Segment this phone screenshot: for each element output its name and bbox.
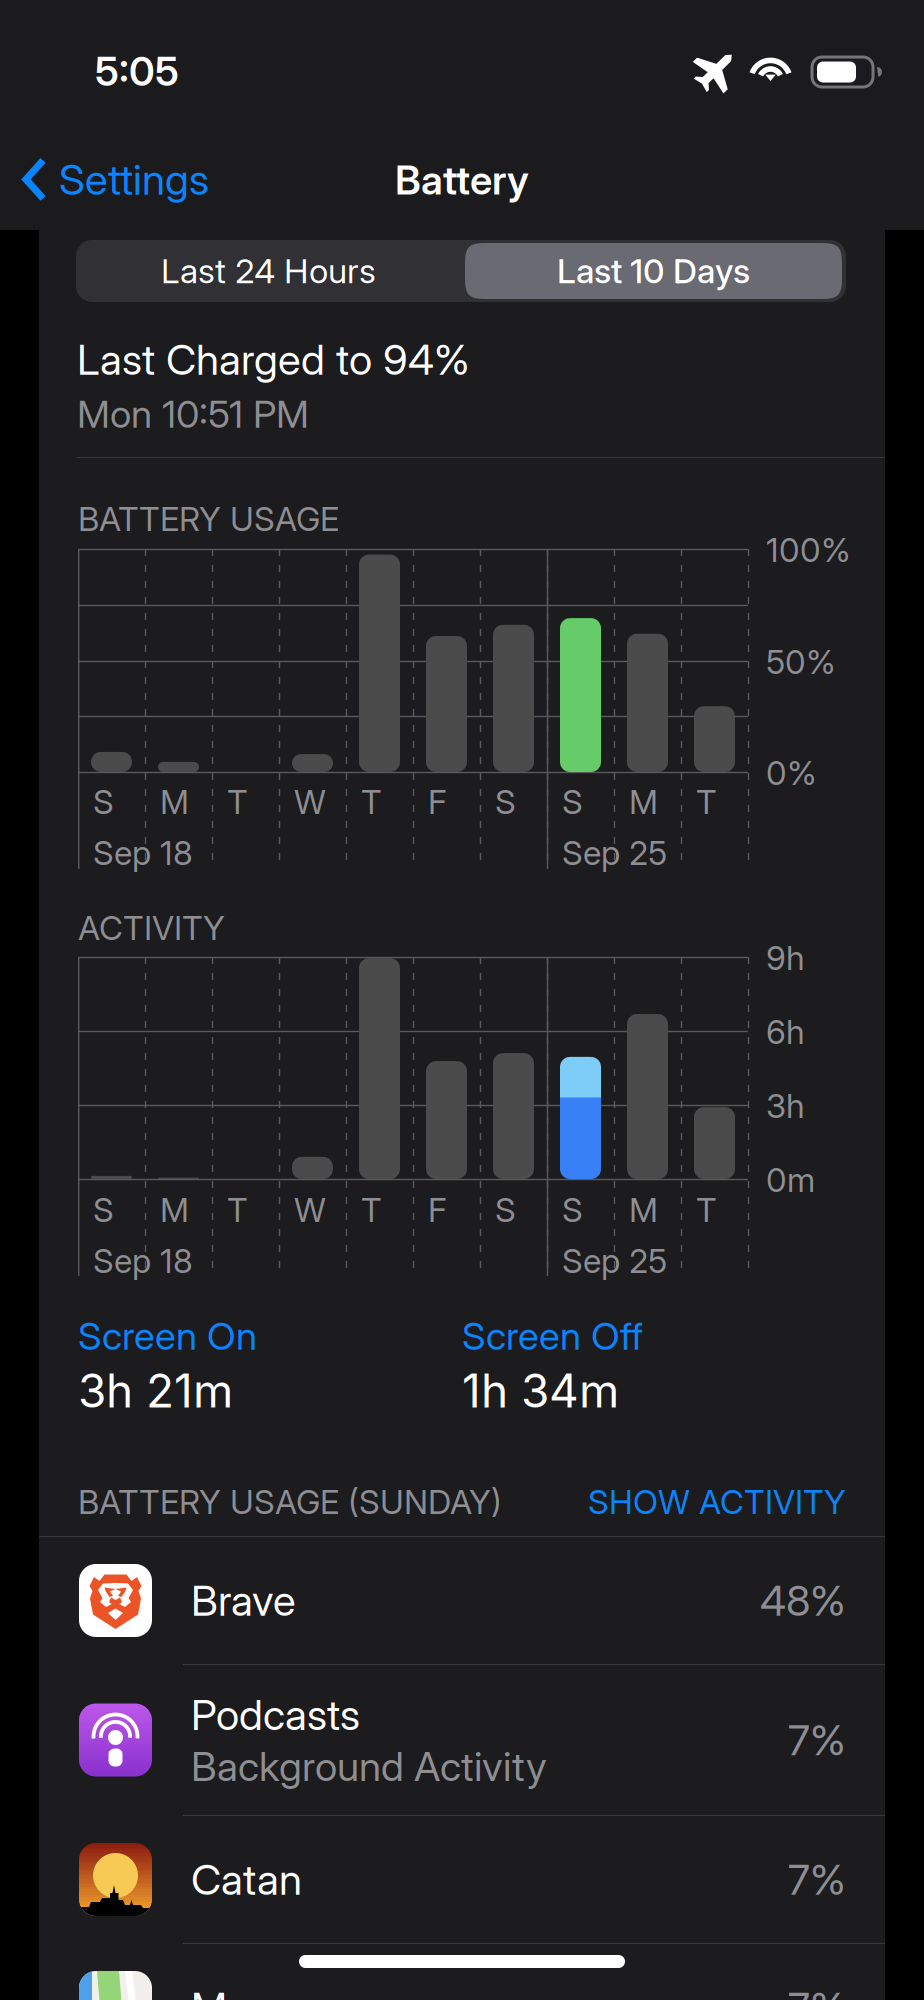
staticText: S xyxy=(562,782,583,822)
staticText: T xyxy=(361,782,382,822)
staticText: 7% xyxy=(788,1854,846,1905)
staticText: BATTERY USAGE xyxy=(78,499,339,539)
staticText: Background Activity xyxy=(191,1742,547,1791)
staticText: T xyxy=(227,1190,248,1230)
staticText: S xyxy=(93,782,114,822)
staticText: Battery xyxy=(395,156,529,204)
staticText: Brave xyxy=(191,1575,296,1626)
staticText: SHOW ACTIVITY xyxy=(588,1482,846,1522)
staticText: Maps xyxy=(191,1982,293,2000)
staticText: 100% xyxy=(766,530,851,570)
staticText: 6h xyxy=(766,1012,805,1052)
staticText: 50% xyxy=(766,642,836,682)
staticText: Mon 10:51 PM xyxy=(77,391,309,437)
staticText: Sep 25 xyxy=(562,1241,667,1281)
staticText: T xyxy=(227,782,248,822)
button[interactable]: Last 24 Hours xyxy=(76,240,461,302)
staticText: W xyxy=(294,782,326,822)
staticText: ACTIVITY xyxy=(78,908,225,948)
staticText: T xyxy=(696,782,717,822)
button[interactable]: Podcasts xyxy=(39,1665,885,1815)
staticText: T xyxy=(361,1190,382,1230)
staticText: 1h 34m xyxy=(462,1363,619,1419)
staticText: S xyxy=(495,1190,516,1230)
staticText: 9h xyxy=(766,938,805,978)
staticText: Settings xyxy=(59,154,209,205)
staticText: W xyxy=(294,1190,326,1230)
staticText: M xyxy=(629,1190,658,1230)
staticText: Screen On xyxy=(78,1313,257,1359)
staticText: Sep 18 xyxy=(93,833,193,873)
staticText: Last 10 Days xyxy=(557,250,750,291)
button[interactable]: SHOW ACTIVITY xyxy=(588,1482,846,1522)
staticText: Screen Off xyxy=(462,1313,643,1359)
staticText: Sep 25 xyxy=(562,833,667,873)
staticText: F xyxy=(428,782,447,822)
staticText: Catan xyxy=(191,1854,302,1905)
button[interactable]: Brave xyxy=(39,1537,885,1664)
button[interactable]: Catan xyxy=(39,1816,885,1943)
staticText: M xyxy=(629,782,658,822)
staticText: 3h 21m xyxy=(78,1363,233,1419)
button[interactable]: Maps xyxy=(39,1944,885,2000)
button[interactable]: Last 10 Days xyxy=(461,240,846,302)
staticText: 7% xyxy=(788,1715,846,1765)
staticText: Podcasts xyxy=(191,1689,360,1740)
staticText: M xyxy=(160,782,189,822)
staticText: 7% xyxy=(788,1982,846,2000)
staticText: Last Charged to 94% xyxy=(77,334,470,385)
staticText: S xyxy=(93,1190,114,1230)
staticText: S xyxy=(562,1190,583,1230)
staticText: Sep 18 xyxy=(93,1241,193,1281)
staticText: Last 24 Hours xyxy=(161,250,376,291)
staticText: S xyxy=(495,782,516,822)
staticText: 3h xyxy=(766,1086,805,1126)
staticText: 48% xyxy=(760,1575,846,1626)
staticText: T xyxy=(696,1190,717,1230)
staticText: BATTERY USAGE (SUNDAY) xyxy=(78,1482,502,1522)
button[interactable]: Settings xyxy=(0,142,227,217)
staticText: 0m xyxy=(766,1160,815,1200)
staticText: M xyxy=(160,1190,189,1230)
staticText: 0% xyxy=(766,753,817,793)
staticText: F xyxy=(428,1190,447,1230)
staticText: 5:05 xyxy=(95,47,179,95)
